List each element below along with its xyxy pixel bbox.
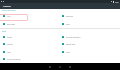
- button[interactable]: Storage: [2, 40, 30, 47]
- staticText: Sound & notification: [66, 36, 81, 38]
- staticText: 3:00: [115, 1, 119, 3]
- button[interactable]: Screen lock/Setting: [2, 55, 30, 62]
- staticText: Wireless & networks: [2, 10, 16, 12]
- button[interactable]: Back: [45, 63, 55, 70]
- staticText: Users: [66, 51, 70, 53]
- button[interactable]: Data usage: [2, 20, 30, 27]
- button[interactable]: Wi-Fi: [2, 12, 30, 19]
- button[interactable]: More: [61, 20, 91, 27]
- button[interactable]: Display: [2, 33, 30, 40]
- button[interactable]: Battery saver: [61, 40, 91, 47]
- button[interactable]: Bluetooth: [61, 12, 91, 19]
- staticText: More: [66, 23, 70, 25]
- button[interactable]: Users: [61, 48, 91, 55]
- staticText: Settings: [3, 5, 11, 8]
- staticText: Apps: [7, 51, 11, 53]
- button[interactable]: Sound & notification: [61, 33, 91, 40]
- staticText: Wi-Fi: [7, 15, 11, 17]
- staticText: Screen lock/Setting: [7, 58, 21, 60]
- staticText: Battery saver: [66, 43, 76, 45]
- staticText: Data usage: [7, 23, 15, 25]
- button[interactable]: Home: [55, 63, 65, 70]
- staticText: Bluetooth: [66, 15, 73, 17]
- button[interactable]: Apps: [2, 48, 30, 55]
- staticText: Storage: [7, 43, 13, 45]
- staticText: Device: [2, 31, 7, 33]
- staticText: Display: [7, 36, 13, 38]
- button[interactable]: Recents: [65, 63, 75, 70]
